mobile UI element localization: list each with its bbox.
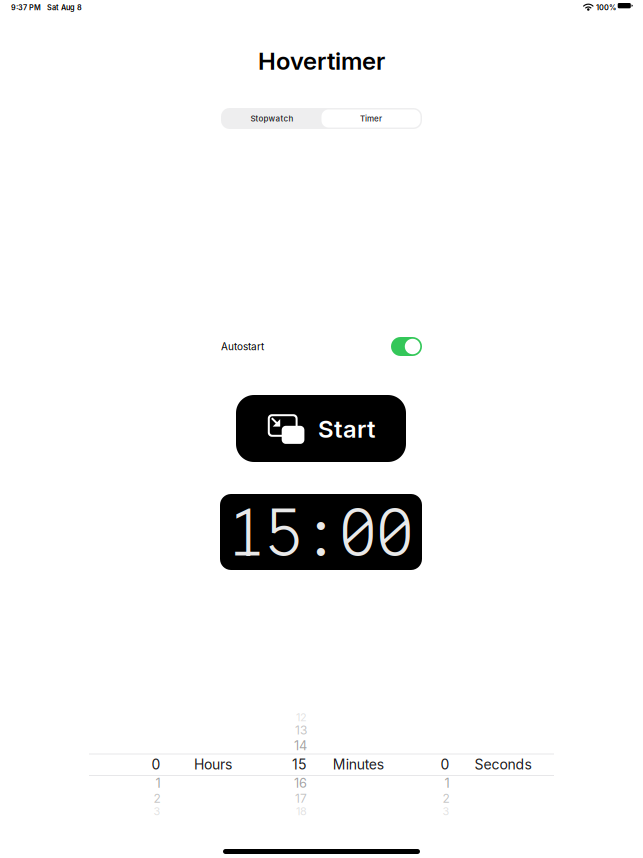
staticText: Timer <box>360 114 382 123</box>
staticText: Hours <box>194 756 232 773</box>
staticText: 0 <box>151 756 160 773</box>
staticText: 14 <box>294 738 307 753</box>
staticText: 0 <box>440 756 449 773</box>
staticText: Start <box>318 414 375 443</box>
staticText: Autostart <box>221 340 264 353</box>
staticText: 13 <box>295 723 307 737</box>
staticText: Stopwatch <box>250 114 293 123</box>
staticText: Minutes <box>333 756 384 773</box>
staticText: 1 <box>444 775 449 791</box>
staticText: 2 <box>442 791 449 806</box>
staticText: Hovertimer <box>258 46 385 75</box>
staticText: 17 <box>295 791 307 806</box>
staticText: 1 <box>155 775 160 791</box>
staticText: 16 <box>294 775 307 791</box>
staticText: 100% <box>596 3 616 12</box>
staticText: 3 <box>153 805 160 818</box>
staticText: 3 <box>442 805 449 818</box>
staticText: Sat Aug 8 <box>47 3 82 12</box>
button[interactable]: Timer <box>321 109 420 127</box>
button[interactable]: Autostart <box>391 337 422 356</box>
staticText: 18 <box>296 805 307 818</box>
staticText: 15:00 <box>228 490 413 574</box>
staticText: Seconds <box>474 756 531 773</box>
staticText: 2 <box>153 791 160 806</box>
staticText: 15 <box>292 756 307 773</box>
staticText: 9:37 PM <box>11 3 41 12</box>
button[interactable]: Stopwatch <box>222 109 321 127</box>
button[interactable]: Start <box>236 395 406 462</box>
staticText: 12 <box>296 711 307 724</box>
